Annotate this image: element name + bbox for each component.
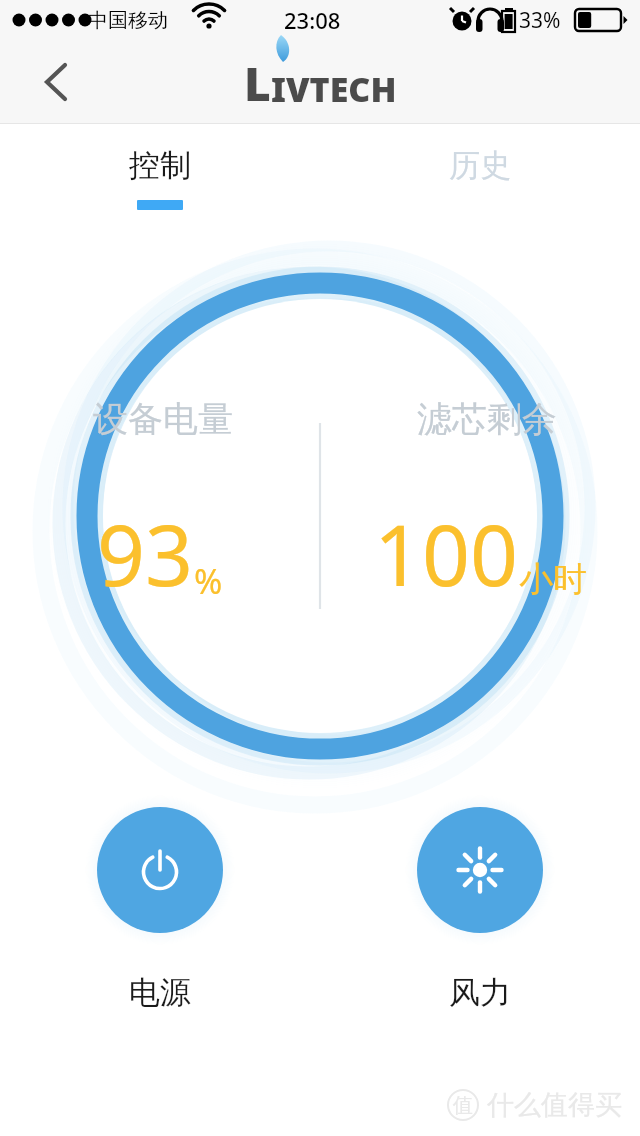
- staticText: 100: [374, 496, 519, 610]
- staticText: 93: [97, 496, 194, 610]
- staticText: 风力: [449, 973, 511, 1012]
- staticText: L: [244, 52, 271, 115]
- staticText: 值: [453, 1093, 473, 1118]
- button[interactable]: Back: [26, 54, 82, 110]
- staticText: 滤芯剩余: [417, 397, 557, 441]
- staticText: %: [194, 558, 223, 604]
- button[interactable]: 历史: [320, 124, 640, 229]
- staticText: 什么值得买: [487, 1088, 622, 1122]
- staticText: 中国移动: [88, 8, 168, 33]
- staticText: 小时: [519, 558, 587, 601]
- button[interactable]: Fan speed: [405, 795, 555, 945]
- staticText: 23:08: [284, 5, 341, 35]
- staticText: 电源: [129, 973, 191, 1012]
- staticText: IVTECH: [271, 66, 397, 112]
- staticText: 设备电量: [93, 397, 233, 441]
- button[interactable]: Power: [85, 795, 235, 945]
- button[interactable]: 控制: [0, 124, 320, 229]
- staticText: 控制: [129, 146, 191, 185]
- staticText: 33%: [519, 6, 561, 35]
- staticText: 历史: [449, 146, 511, 185]
